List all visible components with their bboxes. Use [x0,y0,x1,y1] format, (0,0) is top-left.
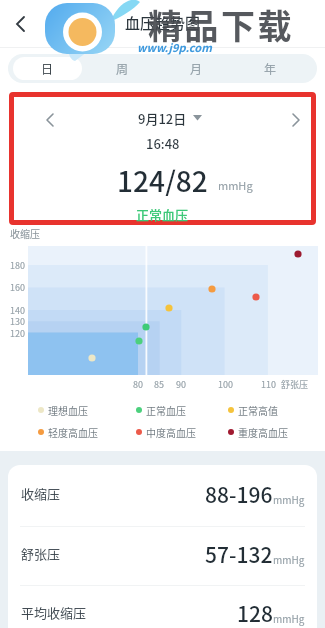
staticText: 80 [133,378,143,391]
staticText: mmHg [273,492,305,506]
staticText: 128 [237,598,273,628]
staticText: 年 [264,60,277,77]
staticText: 舒张压 [281,378,309,391]
staticText: 理想血压 [48,403,88,417]
staticText: 124/82 [117,160,208,196]
button[interactable]: 月 [162,57,230,80]
staticText: 重度高血压 [238,425,288,439]
staticText: 收缩压 [21,484,61,503]
button[interactable]: 平均收缩压 [21,583,305,628]
button[interactable]: 收缩压 [21,464,305,523]
staticText: 85 [154,378,164,391]
staticText: 57-132 [205,539,273,569]
staticText: 日 [41,60,54,77]
staticText: 180 [10,259,25,272]
staticText: 平均收缩压 [21,603,87,622]
staticText: 正常血压 [146,403,186,417]
staticText: 140 [10,304,25,317]
button[interactable]: 舒张压 [21,524,305,583]
button[interactable] [38,108,62,132]
staticText: 舒张压 [21,544,61,563]
staticText: 收缩压 [10,226,40,240]
staticText: 110 [261,378,276,391]
staticText: 90 [176,378,186,391]
staticText: 轻度高血压 [48,425,98,439]
staticText: 120 [10,327,25,340]
staticText: 9月12日 [138,109,187,127]
staticText: 月 [190,60,203,77]
staticText: mmHg [273,611,305,625]
staticText: 正常高值 [238,403,278,417]
staticText: 正常血压 [136,205,189,223]
button[interactable] [284,108,308,132]
staticText: 血压趋势图 [125,12,201,34]
staticText: 160 [10,281,25,294]
staticText: 周 [116,60,129,77]
staticText: mmHg [218,177,253,193]
staticText: 中度高血压 [146,425,196,439]
staticText: 16:48 [146,134,180,152]
staticText: www.j9p.com [137,39,212,55]
staticText: 100 [218,378,233,391]
staticText: mmHg [273,552,305,566]
staticText: 88-196 [205,479,273,509]
button[interactable]: 日 [13,57,82,80]
staticText: 精品下载 [148,0,294,49]
button[interactable] [8,12,36,36]
button[interactable]: 年 [236,57,304,80]
staticText: 130 [10,315,25,328]
button[interactable]: 周 [88,57,156,80]
